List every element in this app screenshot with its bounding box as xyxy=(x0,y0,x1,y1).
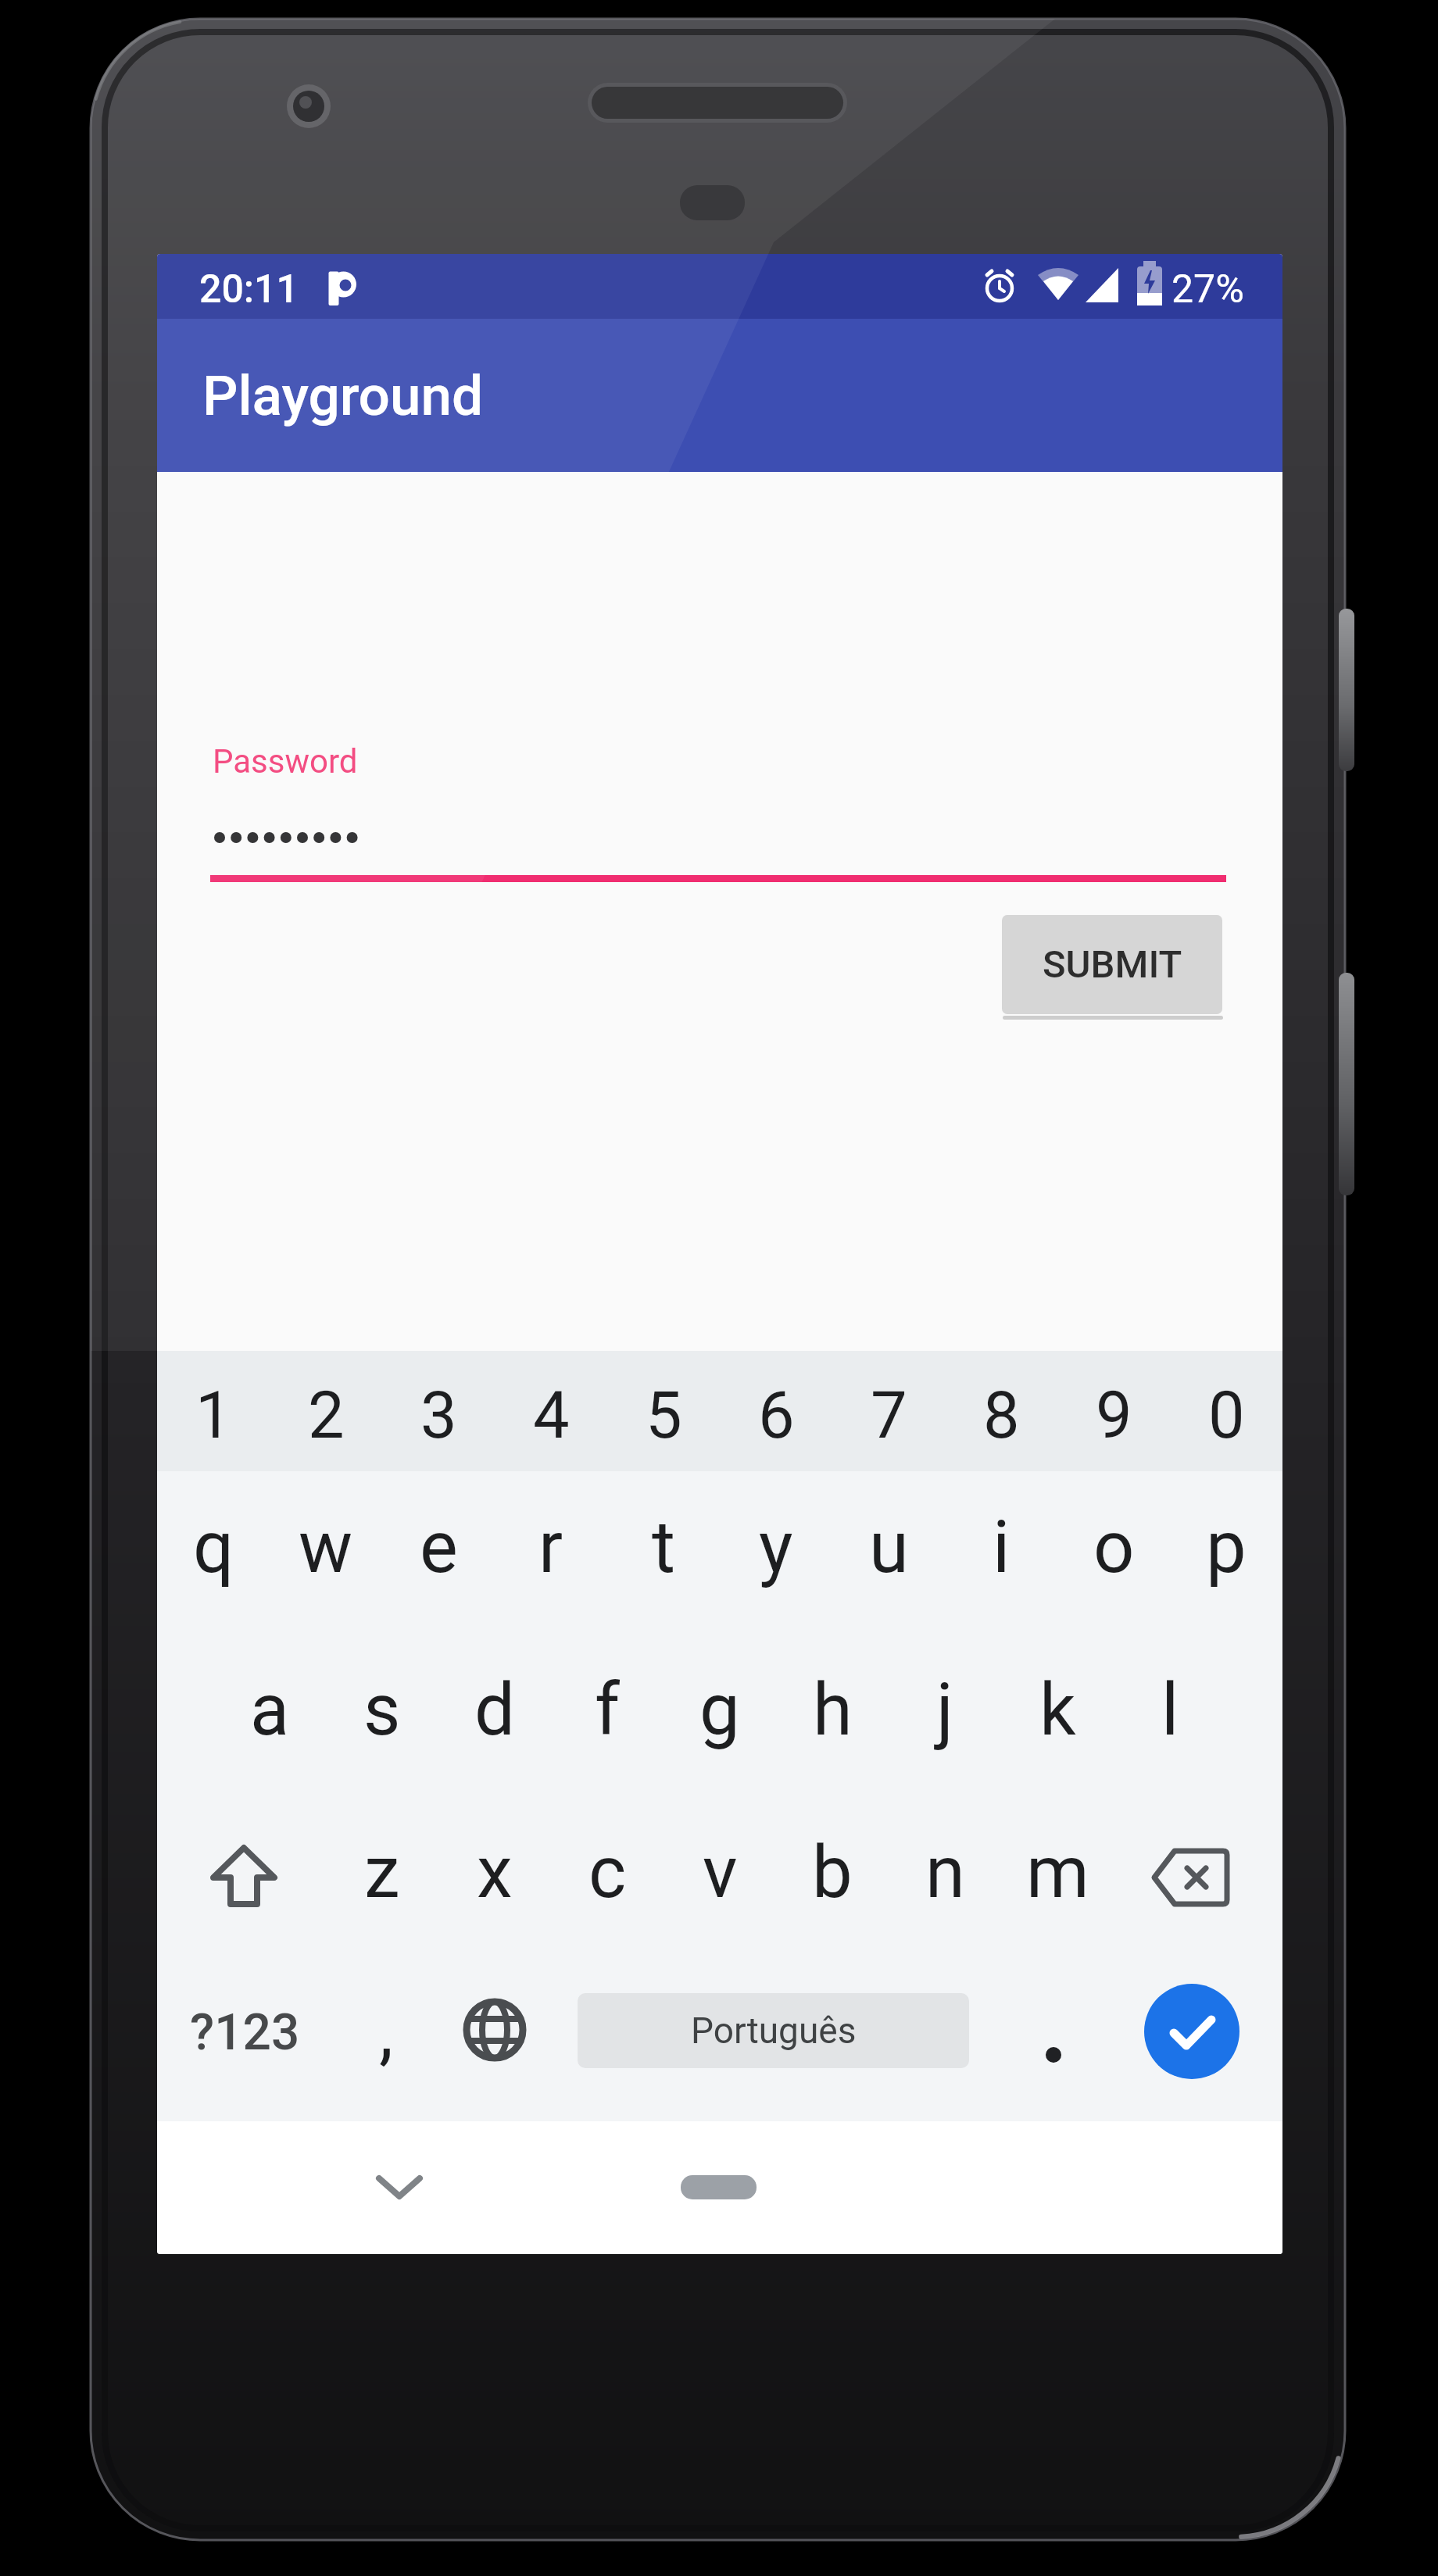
button[interactable]: c xyxy=(537,1802,678,1943)
button[interactable]: i xyxy=(931,1477,1071,1618)
button[interactable]: l xyxy=(1100,1640,1240,1781)
staticText: 8 xyxy=(983,1377,1020,1453)
staticText: p xyxy=(1206,1506,1247,1590)
staticText: v xyxy=(703,1831,738,1915)
button[interactable]: g xyxy=(649,1640,790,1781)
button[interactable]: a xyxy=(199,1640,340,1781)
button[interactable]: k xyxy=(987,1640,1128,1781)
button[interactable]: w xyxy=(256,1477,396,1618)
button[interactable]: ?123 xyxy=(174,1962,315,2103)
button[interactable]: 4 xyxy=(481,1345,621,1485)
staticText: c xyxy=(588,1831,627,1915)
staticText: j xyxy=(936,1668,954,1752)
staticText: , xyxy=(379,1990,394,2074)
staticText: 5 xyxy=(646,1377,682,1453)
button[interactable]: 1 xyxy=(157,1345,284,1485)
button[interactable]: h xyxy=(762,1640,903,1781)
button[interactable]: v xyxy=(649,1802,790,1943)
staticText: b xyxy=(812,1831,853,1915)
staticText: z xyxy=(364,1831,400,1915)
staticText: SUBMIT xyxy=(1043,942,1182,987)
staticText: w xyxy=(299,1506,353,1590)
staticText: 27% xyxy=(1172,266,1244,307)
button[interactable]: n xyxy=(875,1802,1015,1943)
button[interactable]: 0 xyxy=(1156,1345,1282,1485)
staticText: t xyxy=(652,1506,676,1590)
button[interactable]: Português xyxy=(578,1993,969,2068)
button[interactable]: b xyxy=(762,1802,903,1943)
button[interactable]: j xyxy=(875,1640,1015,1781)
staticText: 2 xyxy=(308,1377,345,1453)
button[interactable] xyxy=(681,2175,757,2199)
staticText: r xyxy=(538,1506,563,1590)
staticText: 9 xyxy=(1096,1377,1132,1453)
button[interactable]: e xyxy=(368,1477,509,1618)
staticText: k xyxy=(1039,1668,1076,1752)
staticText: y xyxy=(759,1506,793,1590)
staticText: ?123 xyxy=(190,2003,300,2062)
staticText: q xyxy=(193,1506,234,1590)
staticText: e xyxy=(420,1506,458,1590)
staticText: g xyxy=(699,1668,740,1752)
staticText: 3 xyxy=(420,1377,457,1453)
staticText: u xyxy=(869,1506,909,1590)
staticText: s xyxy=(363,1668,401,1752)
staticText: 20:11 xyxy=(199,266,299,307)
button[interactable]: 5 xyxy=(593,1345,734,1485)
button[interactable] xyxy=(1144,1984,1239,2079)
staticText: f xyxy=(595,1668,620,1752)
staticText: Password xyxy=(213,742,358,781)
button[interactable]: m xyxy=(987,1802,1128,1943)
staticText: m xyxy=(1026,1831,1089,1915)
button[interactable]: d xyxy=(424,1640,565,1781)
button[interactable]: u xyxy=(818,1477,959,1618)
button[interactable]: t xyxy=(593,1477,734,1618)
button[interactable]: 7 xyxy=(818,1345,959,1485)
staticText: d xyxy=(474,1668,515,1752)
button[interactable]: 3 xyxy=(368,1345,509,1485)
button[interactable]: 6 xyxy=(706,1345,846,1485)
button[interactable]: y xyxy=(706,1477,846,1618)
staticText: l xyxy=(1161,1668,1179,1752)
button[interactable] xyxy=(1151,1848,1229,1907)
button[interactable]: q xyxy=(157,1477,284,1618)
staticText: a xyxy=(250,1668,290,1752)
staticText: 0 xyxy=(1208,1377,1245,1453)
button[interactable]: x xyxy=(424,1802,565,1943)
button[interactable]: 2 xyxy=(256,1345,396,1485)
button[interactable]: , xyxy=(316,1962,456,2103)
staticText: n xyxy=(925,1831,965,1915)
button[interactable]: r xyxy=(481,1477,621,1618)
staticText: 6 xyxy=(758,1377,795,1453)
button[interactable] xyxy=(209,1845,279,1910)
staticText: Português xyxy=(691,2010,857,2052)
button[interactable] xyxy=(1038,2039,1069,2070)
staticText: Playground xyxy=(202,363,484,428)
button[interactable]: SUBMIT xyxy=(1002,915,1222,1014)
button[interactable]: p xyxy=(1156,1477,1282,1618)
button[interactable]: s xyxy=(312,1640,453,1781)
button[interactable]: z xyxy=(312,1802,453,1943)
button[interactable]: 9 xyxy=(1043,1345,1184,1485)
button[interactable]: 8 xyxy=(931,1345,1071,1485)
button[interactable]: f xyxy=(537,1640,678,1781)
staticText: 4 xyxy=(533,1377,570,1453)
button[interactable] xyxy=(376,2175,423,2200)
staticText: x xyxy=(477,1831,513,1915)
staticText: i xyxy=(993,1506,1011,1590)
button[interactable] xyxy=(460,1995,530,2065)
staticText: 7 xyxy=(871,1377,907,1453)
staticText: 1 xyxy=(195,1377,232,1453)
staticText: h xyxy=(813,1668,853,1752)
staticText: o xyxy=(1093,1506,1135,1590)
button[interactable]: o xyxy=(1043,1477,1184,1618)
